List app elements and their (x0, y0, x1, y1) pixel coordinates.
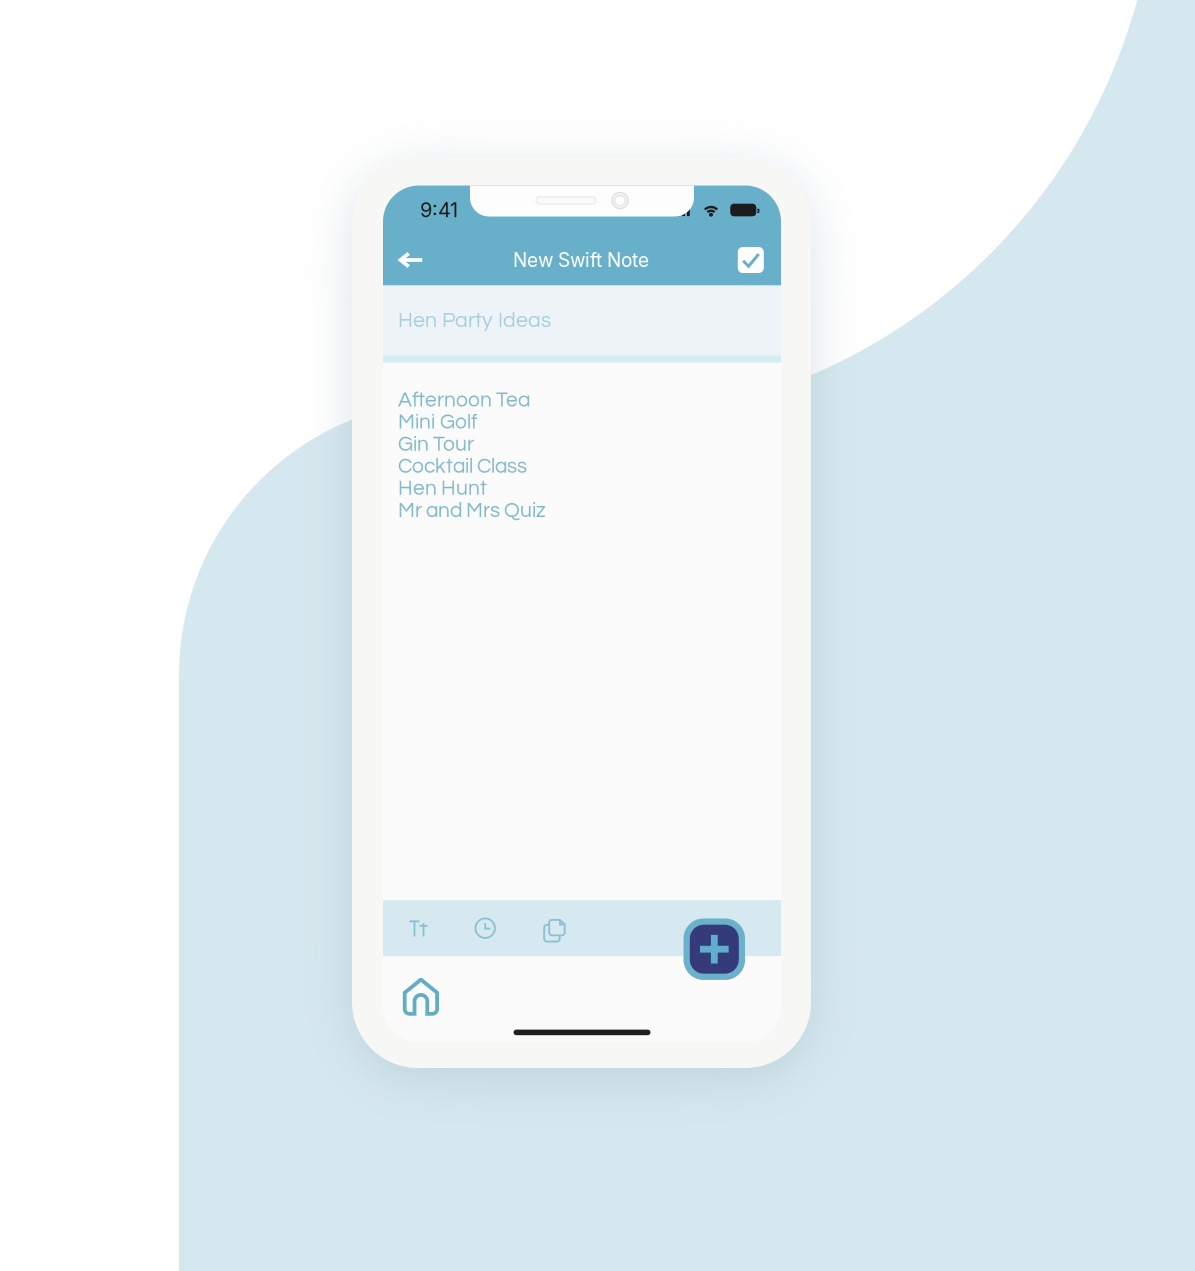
button[interactable]: Reminder (459, 902, 512, 955)
button[interactable]: Duplicate (525, 902, 578, 955)
staticText: Gin Tour (398, 433, 474, 455)
button[interactable]: Add note (683, 918, 745, 980)
button[interactable]: Text formatting (392, 902, 445, 955)
staticText: Mr and Mrs Quiz (398, 500, 546, 521)
staticText: Hen Hunt (398, 478, 487, 499)
button[interactable]: Back (389, 238, 433, 282)
staticText: New Swift Note (513, 248, 649, 271)
staticText: 9:41 (420, 198, 458, 222)
staticText: Afternoon Tea (398, 389, 530, 411)
staticText: Cocktail Class (398, 456, 527, 477)
button[interactable]: Home (394, 970, 448, 1024)
staticText: Mini Golf (398, 411, 477, 433)
staticText: Hen Party Ideas (398, 309, 551, 331)
button[interactable]: Save (729, 238, 773, 282)
